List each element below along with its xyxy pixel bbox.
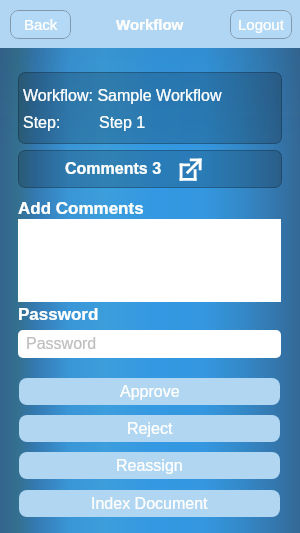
staticText: Password [18, 305, 99, 324]
button[interactable]: Approve [19, 378, 280, 405]
staticText: Step 1 [99, 114, 146, 132]
button[interactable]: Reassign [19, 452, 280, 479]
staticText: Step: [23, 114, 61, 132]
staticText: Reassign [116, 457, 183, 475]
staticText: Workflow [116, 16, 184, 33]
button[interactable]: Comments 3 [18, 150, 282, 188]
other: Open comments [179, 158, 202, 181]
staticText: Back [24, 16, 58, 33]
button[interactable]: Password [18, 330, 281, 358]
staticText: Workflow: Sample Workflow [23, 87, 222, 105]
staticText: Approve [120, 383, 180, 401]
staticText: Password [26, 335, 97, 353]
button[interactable]: Reject [19, 415, 280, 442]
staticText: Index Document [91, 495, 208, 513]
staticText: Comments 3 [65, 160, 162, 178]
button[interactable]: Back [10, 10, 71, 39]
staticText: Logout [238, 16, 284, 33]
staticText: Add Comments [18, 199, 144, 218]
button[interactable]: Index Document [19, 490, 280, 517]
button[interactable]: Logout [230, 10, 292, 39]
staticText: Reject [127, 420, 173, 438]
